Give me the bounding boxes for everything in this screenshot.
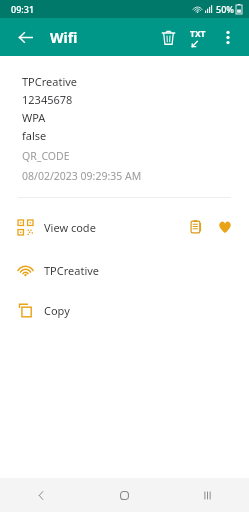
staticText: TXT <box>190 28 206 40</box>
staticText: 09:31 <box>11 3 35 15</box>
staticText: WPA <box>22 110 46 125</box>
button[interactable]: Favorite <box>211 213 239 241</box>
staticText: 08/02/2023 09:29:35 AM <box>22 169 142 183</box>
staticText: TPCreative <box>22 74 78 89</box>
staticText: View code <box>44 220 96 235</box>
staticText: Wifi <box>50 28 78 47</box>
staticText: Copy <box>44 303 70 318</box>
button[interactable]: Back <box>12 24 38 50</box>
staticText: TPCreative <box>44 263 100 278</box>
staticText: false <box>22 128 47 143</box>
staticText: 12345678 <box>22 92 73 107</box>
button[interactable]: Copy to clipboard <box>181 213 209 241</box>
button[interactable]: More options <box>213 22 243 52</box>
button[interactable]: Home <box>83 478 166 512</box>
staticText: 50% <box>216 3 234 15</box>
staticText: QR_CODE <box>22 149 70 163</box>
button[interactable]: Delete <box>153 22 183 52</box>
button[interactable]: TPCreative <box>0 257 249 283</box>
button[interactable]: Back <box>0 478 83 512</box>
button[interactable]: Recent apps <box>166 478 249 512</box>
button[interactable]: View code <box>0 212 249 242</box>
button[interactable]: Export as TXT <box>183 22 213 52</box>
button[interactable]: Copy <box>0 297 249 323</box>
